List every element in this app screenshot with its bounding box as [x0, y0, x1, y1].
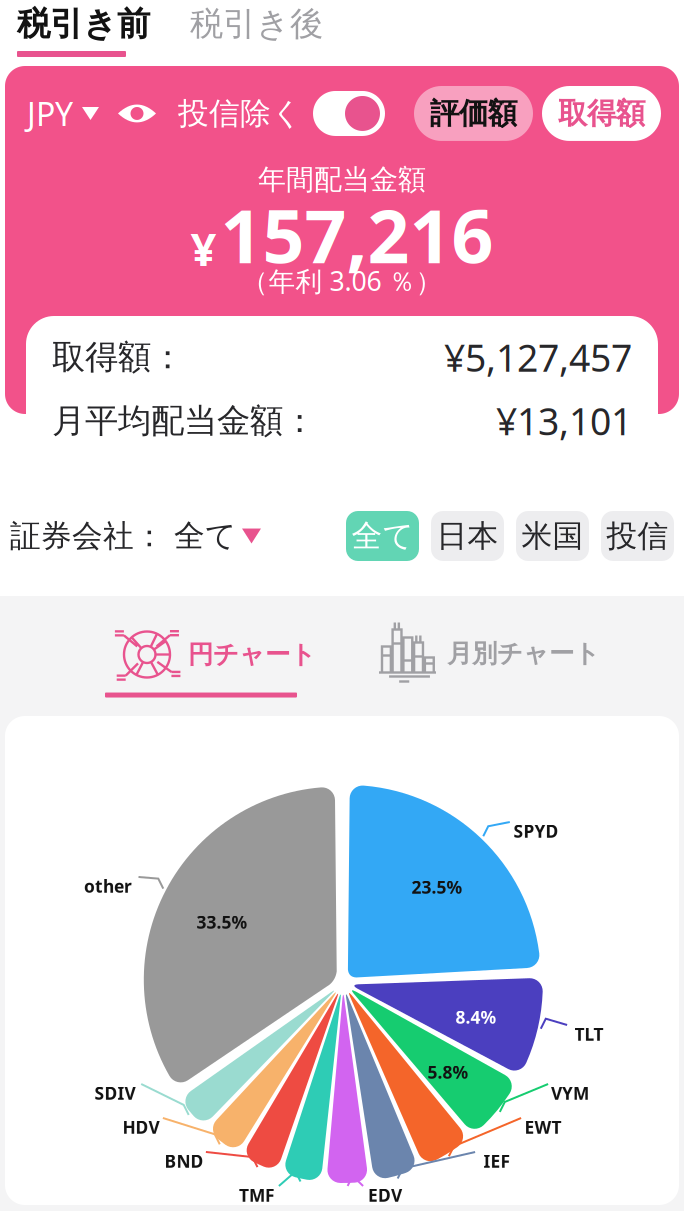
staticText: 取得額 [558, 95, 645, 132]
staticText: 月平均配当金額： [52, 400, 316, 442]
staticText: 米国 [521, 517, 583, 555]
button[interactable]: 月別チャート [336, 611, 620, 700]
staticText: 投信除く [178, 94, 302, 133]
staticText: ¥5,127,457 [444, 332, 632, 382]
button[interactable]: 税引き後 [160, 0, 337, 57]
staticText: 23.5% [411, 875, 462, 898]
staticText: TLT [574, 1022, 603, 1045]
staticText: IEF [483, 1149, 510, 1172]
button[interactable]: 円チャート [0, 608, 336, 703]
staticText: 税引き前 [17, 3, 150, 45]
staticText: 投信 [606, 517, 668, 555]
staticText: ¥ [190, 218, 216, 279]
staticText: VYM [551, 1081, 589, 1104]
button[interactable]: Hide amounts [99, 97, 162, 130]
staticText: ¥13,101 [496, 396, 632, 446]
staticText: SPYD [513, 819, 558, 842]
button[interactable]: 米国 [516, 511, 589, 561]
staticText: TMF [239, 1183, 275, 1206]
staticText: 税引き後 [190, 3, 323, 45]
staticText: 月別チャート [447, 637, 600, 669]
button[interactable]: 日本 [431, 511, 504, 561]
staticText: HDV [122, 1115, 159, 1138]
button[interactable]: JPY [27, 86, 99, 141]
staticText: 5.8% [427, 1060, 468, 1083]
staticText: 33.5% [196, 910, 247, 933]
button[interactable]: 取得額 [542, 86, 661, 141]
button[interactable]: 投信 [601, 511, 674, 561]
staticText: JPY [27, 92, 73, 135]
staticText: SDIV [94, 1081, 135, 1104]
staticText: 日本 [436, 517, 498, 555]
staticText: EWT [524, 1115, 561, 1138]
staticText: （年利 3.06 ％） [241, 263, 442, 299]
staticText: 評価額 [430, 95, 517, 132]
staticText: EDV [368, 1183, 402, 1206]
staticText: 取得額： [52, 336, 184, 378]
staticText: 円チャート [188, 638, 316, 670]
staticText: 全て [351, 517, 413, 555]
staticText: 157,216 [220, 186, 493, 284]
button[interactable]: 全て [346, 511, 419, 561]
button[interactable]: 税引き前 [0, 0, 160, 57]
button[interactable]: 評価額 [414, 86, 533, 141]
staticText: 8.4% [455, 1005, 496, 1028]
staticText: BND [164, 1149, 203, 1172]
staticText: 証券会社： 全て [10, 517, 236, 555]
staticText: 年間配当金額 [258, 162, 426, 197]
button[interactable]: 証券会社： 全て [10, 505, 261, 567]
staticText: other [84, 874, 132, 897]
button[interactable]: Exclude mutual funds [313, 91, 385, 136]
